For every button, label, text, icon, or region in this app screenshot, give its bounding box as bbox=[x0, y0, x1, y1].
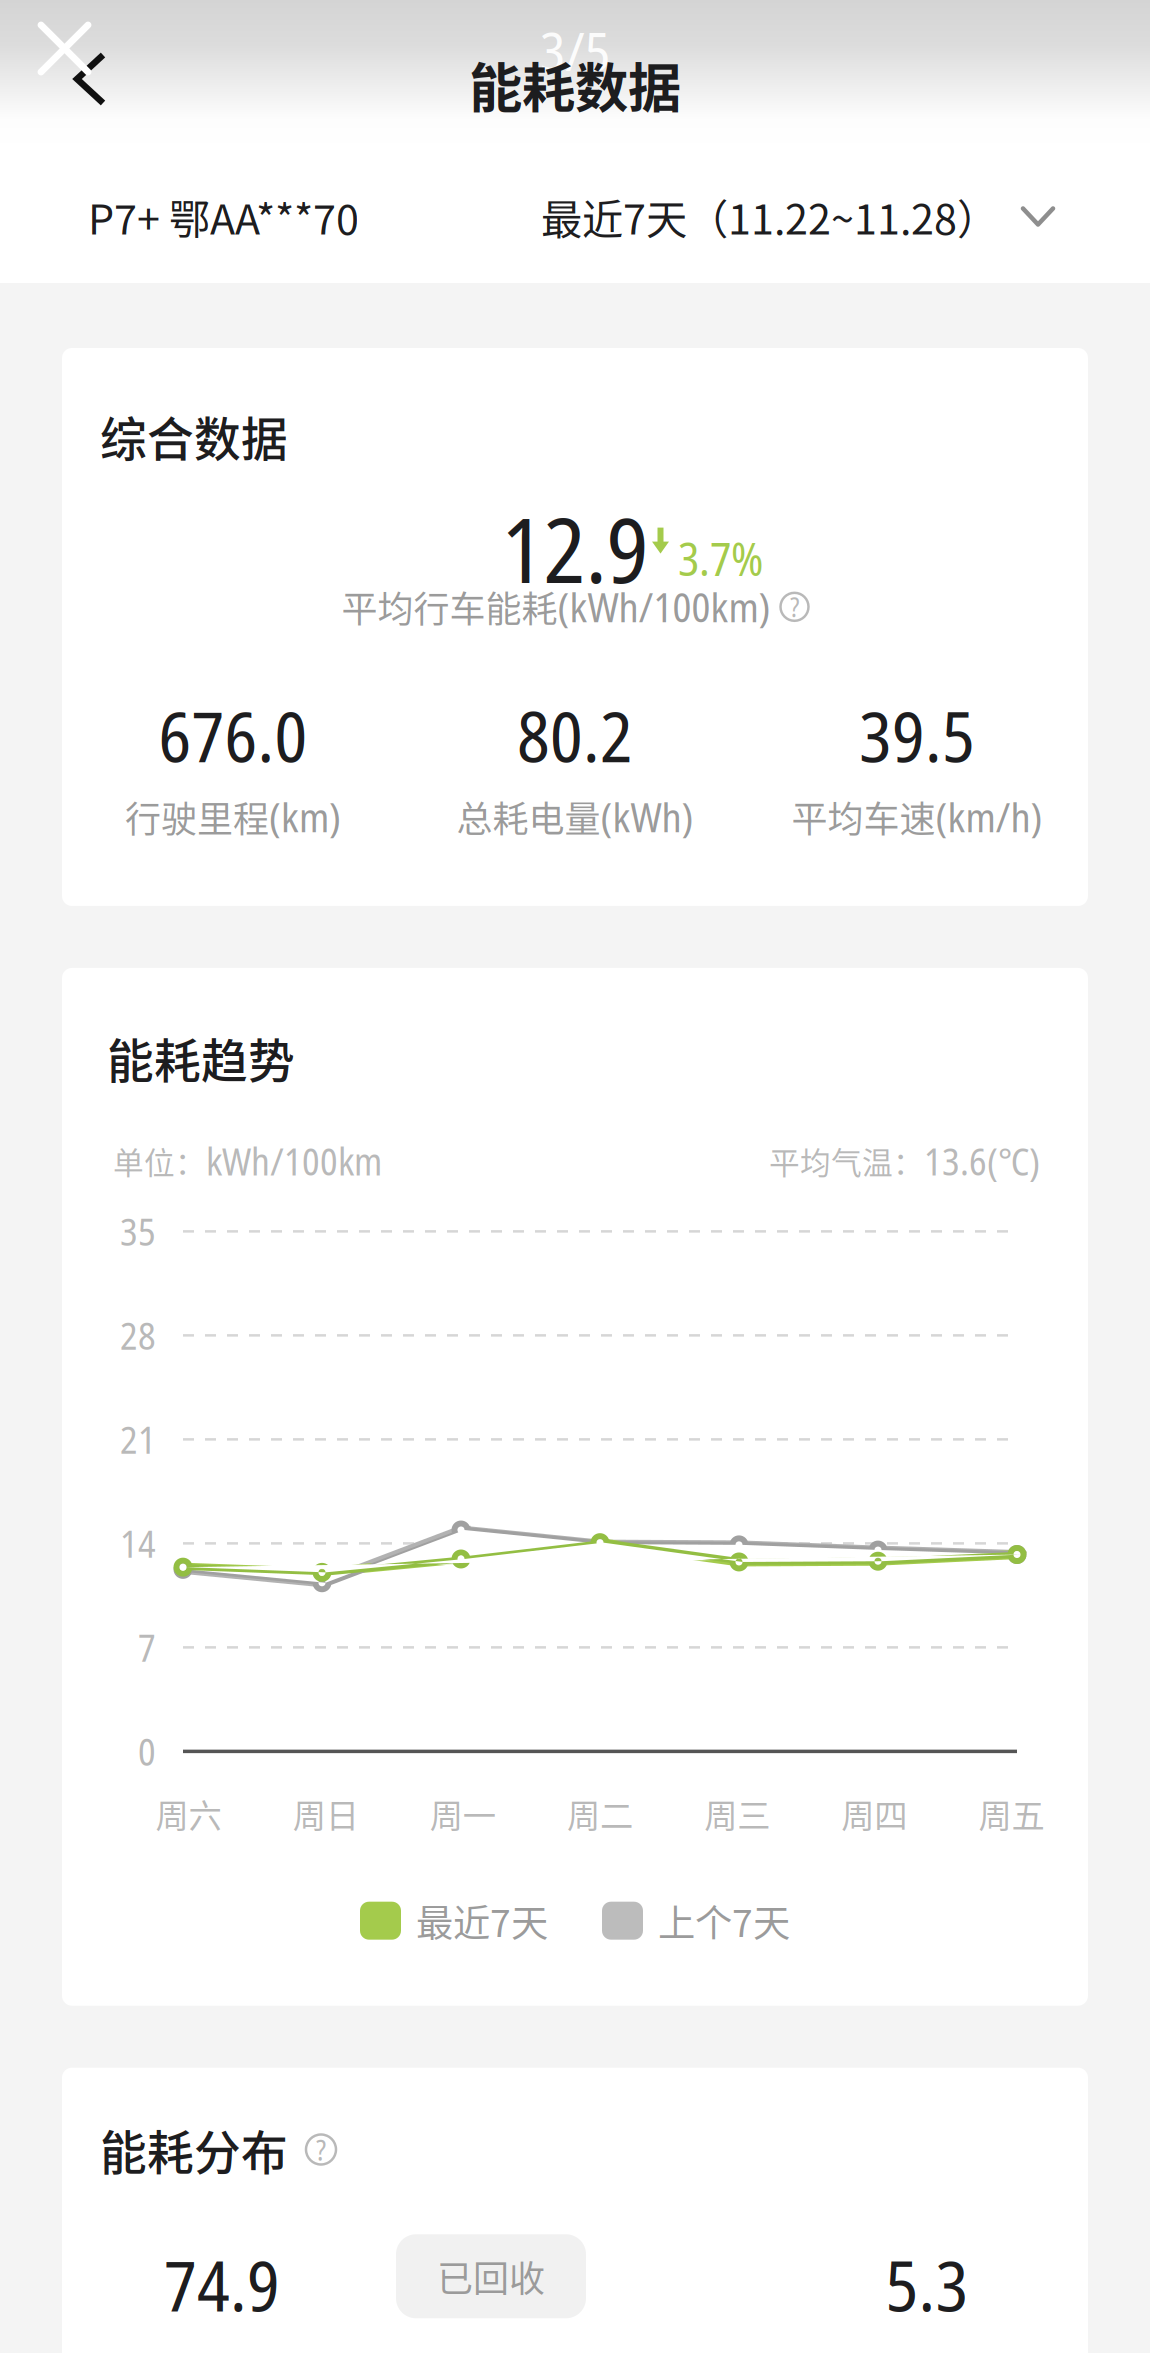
staticText: 能耗数据 bbox=[469, 46, 681, 123]
staticText: 周四 bbox=[841, 1789, 907, 1838]
staticText: 周六 bbox=[156, 1789, 222, 1838]
staticText: 74.9 bbox=[164, 2237, 280, 2332]
staticText: 35 bbox=[120, 1206, 156, 1257]
staticText: 总耗电量 bbox=[456, 791, 600, 843]
staticText: 3.7% bbox=[678, 528, 763, 589]
staticText: 80.2 bbox=[517, 688, 633, 782]
staticText: 行驶里程 bbox=[125, 791, 269, 843]
button[interactable]: Back bbox=[0, 0, 107, 106]
staticText: 28 bbox=[120, 1310, 156, 1361]
staticText: ? bbox=[790, 588, 799, 625]
staticText: (km/h) bbox=[935, 789, 1042, 844]
button[interactable]: Close bbox=[0, 0, 92, 76]
staticText: 平均行车能耗 bbox=[341, 581, 557, 633]
staticText: 平均车速 bbox=[791, 791, 935, 843]
staticText: kWh/100km bbox=[206, 1135, 382, 1186]
staticText: 0 bbox=[138, 1726, 156, 1777]
staticText: 单位： bbox=[113, 1139, 206, 1183]
staticText: 7 bbox=[138, 1622, 156, 1673]
staticText: (km) bbox=[269, 789, 341, 844]
staticText: 12.9 bbox=[501, 488, 648, 609]
staticText: ? bbox=[316, 2130, 326, 2169]
staticText: 周一 bbox=[430, 1789, 496, 1838]
staticText: 周日 bbox=[293, 1789, 359, 1838]
staticText: 能耗分布 bbox=[100, 2116, 288, 2183]
staticText: 5.3 bbox=[885, 2237, 968, 2332]
staticText: 综合数据 bbox=[100, 402, 288, 470]
staticText: 周三 bbox=[704, 1789, 770, 1838]
staticText: 3/5 bbox=[540, 14, 610, 87]
staticText: 平均气温： bbox=[769, 1139, 924, 1183]
staticText: (kWh/100km) bbox=[557, 580, 770, 634]
staticText: 21 bbox=[120, 1414, 156, 1465]
staticText: 39.5 bbox=[859, 688, 975, 782]
staticText: 最近7天（11.22~11.28） bbox=[541, 187, 998, 246]
staticText: 已回收 bbox=[437, 2250, 545, 2302]
staticText: 周五 bbox=[978, 1789, 1044, 1838]
button[interactable]: 最近7天（11.22~11.28） bbox=[541, 187, 1056, 246]
staticText: 能耗趋势 bbox=[107, 1024, 295, 1092]
staticText: (kWh) bbox=[600, 789, 693, 844]
staticText: 最近7天 bbox=[416, 1894, 548, 1948]
staticText: 周二 bbox=[567, 1789, 633, 1838]
staticText: 上个7天 bbox=[658, 1894, 790, 1948]
staticText: 676.0 bbox=[158, 688, 307, 782]
staticText: 13.6(℃) bbox=[924, 1135, 1040, 1186]
staticText: 14 bbox=[120, 1518, 156, 1569]
staticText: P7+ 鄂AA***70 bbox=[88, 187, 359, 246]
